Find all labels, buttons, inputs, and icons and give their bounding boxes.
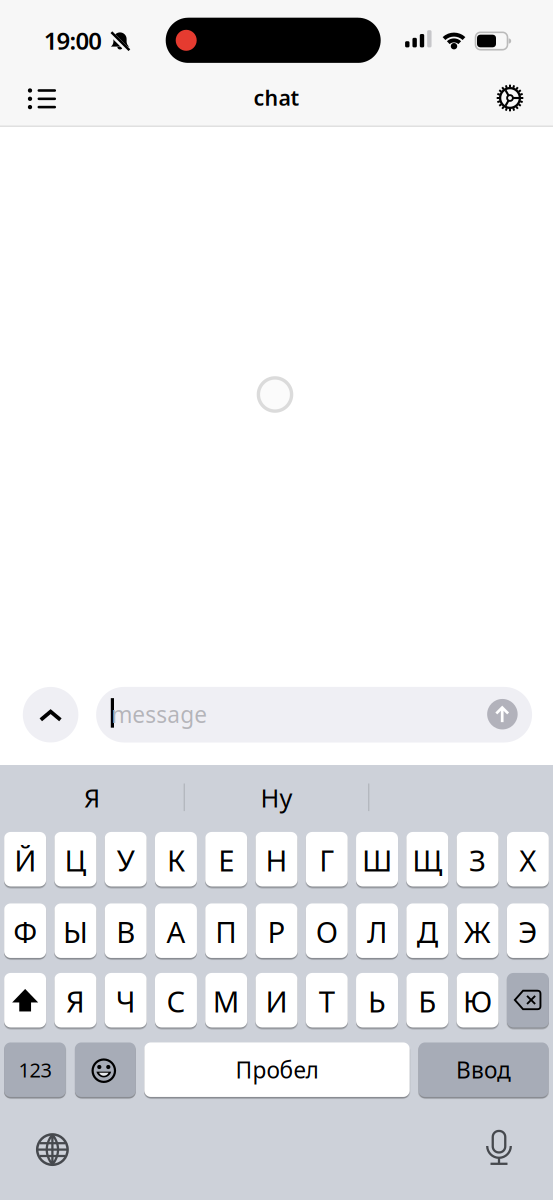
- staticText: С: [166, 982, 185, 1021]
- button[interactable]: Ц: [54, 832, 96, 886]
- button[interactable]: [4, 973, 46, 1027]
- button[interactable]: М: [205, 973, 247, 1027]
- button[interactable]: Л: [356, 903, 398, 958]
- staticText: Ш: [362, 841, 392, 880]
- staticText: Ф: [13, 912, 37, 951]
- button[interactable]: Ь: [356, 973, 398, 1027]
- staticText: Д: [417, 912, 438, 951]
- staticText: chat: [253, 83, 299, 112]
- button[interactable]: Ш: [356, 832, 398, 886]
- staticText: Ж: [464, 912, 491, 951]
- button[interactable]: С: [155, 973, 197, 1027]
- staticText: Т: [319, 982, 335, 1021]
- button[interactable]: [481, 1130, 516, 1165]
- button[interactable]: Я: [54, 973, 96, 1027]
- button[interactable]: Пробел: [144, 1042, 410, 1097]
- staticText: Б: [418, 982, 436, 1021]
- staticText: message: [111, 699, 207, 729]
- button[interactable]: П: [205, 903, 247, 958]
- staticText: П: [215, 912, 237, 951]
- staticText: Ю: [463, 982, 492, 1021]
- staticText: Н: [265, 841, 287, 880]
- button[interactable]: А: [155, 903, 197, 958]
- button[interactable]: Я: [2, 772, 182, 824]
- staticText: В: [116, 912, 135, 951]
- button[interactable]: [36, 1133, 69, 1166]
- button[interactable]: Н: [255, 832, 297, 886]
- staticText: Я: [66, 982, 85, 1021]
- staticText: Щ: [412, 841, 442, 880]
- button[interactable]: Х: [507, 832, 549, 886]
- button[interactable]: З: [457, 832, 499, 886]
- staticText: И: [265, 982, 287, 1021]
- staticText: 19:00: [44, 25, 102, 56]
- button[interactable]: [507, 973, 549, 1027]
- button[interactable]: В: [105, 903, 147, 958]
- staticText: Й: [14, 841, 36, 880]
- button[interactable]: [20, 79, 64, 119]
- staticText: Ы: [63, 912, 88, 951]
- button[interactable]: У: [105, 832, 147, 886]
- button[interactable]: Ы: [54, 903, 96, 958]
- button[interactable]: Т: [306, 973, 348, 1027]
- button[interactable]: 123: [4, 1042, 66, 1097]
- button[interactable]: Ф: [4, 903, 46, 958]
- staticText: Ч: [116, 982, 136, 1021]
- button[interactable]: [488, 78, 532, 118]
- button[interactable]: Й: [4, 832, 46, 886]
- button[interactable]: И: [255, 973, 297, 1027]
- staticText: Р: [267, 912, 285, 951]
- staticText: З: [469, 841, 486, 880]
- button[interactable]: О: [306, 903, 348, 958]
- staticText: Г: [319, 841, 334, 880]
- button[interactable]: Б: [406, 973, 448, 1027]
- staticText: М: [213, 982, 240, 1021]
- staticText: 123: [18, 1056, 51, 1083]
- staticText: К: [167, 841, 185, 880]
- button[interactable]: Ж: [457, 903, 499, 958]
- staticText: О: [316, 912, 338, 951]
- button[interactable]: Р: [255, 903, 297, 958]
- button[interactable]: Щ: [406, 832, 448, 886]
- button[interactable]: [487, 699, 518, 729]
- staticText: А: [166, 912, 185, 951]
- button[interactable]: Э: [507, 903, 549, 958]
- staticText: Ц: [64, 841, 86, 880]
- button[interactable]: Д: [406, 903, 448, 958]
- button[interactable]: [75, 1042, 136, 1097]
- button[interactable]: К: [155, 832, 197, 886]
- button[interactable]: message: [96, 687, 532, 742]
- staticText: Ь: [368, 982, 386, 1021]
- button[interactable]: Ч: [105, 973, 147, 1027]
- button[interactable]: Е: [205, 832, 247, 886]
- staticText: У: [117, 841, 135, 880]
- staticText: Л: [367, 912, 387, 951]
- staticText: Э: [518, 912, 537, 951]
- button[interactable]: Г: [306, 832, 348, 886]
- staticText: Ввод: [456, 1055, 511, 1085]
- staticText: Ну: [260, 781, 292, 814]
- button[interactable]: Ну: [186, 772, 366, 824]
- staticText: Х: [519, 841, 536, 880]
- button[interactable]: Ю: [457, 973, 499, 1027]
- staticText: Я: [84, 781, 100, 814]
- button[interactable]: Ввод: [418, 1042, 548, 1097]
- staticText: Е: [218, 841, 234, 880]
- button[interactable]: [23, 687, 78, 742]
- staticText: Пробел: [235, 1055, 318, 1085]
